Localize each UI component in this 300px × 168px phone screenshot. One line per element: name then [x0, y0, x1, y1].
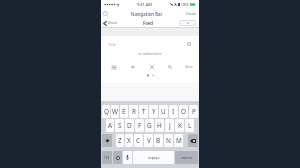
button[interactable]: V — [144, 134, 153, 147]
staticText: or add an item — [101, 51, 199, 56]
button[interactable]: Q — [102, 105, 110, 118]
button[interactable]: Undo — [129, 63, 137, 71]
staticText: 100% — [181, 3, 189, 7]
button[interactable]: 123 — [102, 151, 112, 164]
button[interactable]: Z — [116, 134, 124, 147]
button[interactable]: Title — [101, 38, 199, 50]
staticText: V — [147, 136, 151, 145]
staticText: K — [178, 121, 182, 130]
staticText: J — [169, 121, 171, 130]
button[interactable]: Search — [166, 63, 174, 71]
staticText: R — [132, 107, 136, 116]
staticText: espaço — [148, 155, 160, 160]
staticText: Q — [104, 107, 109, 116]
staticText: More — [185, 65, 193, 69]
button[interactable]: Options — [179, 20, 196, 26]
staticText: O — [181, 107, 186, 116]
staticText: N — [166, 136, 171, 145]
button[interactable]: Backspace — [188, 134, 198, 147]
button[interactable]: Emoji — [113, 151, 122, 164]
staticText: P — [192, 107, 196, 116]
button[interactable]: M — [174, 134, 183, 147]
staticText: M — [176, 136, 182, 145]
button[interactable]: E — [120, 105, 128, 118]
button[interactable]: I — [169, 105, 178, 118]
button[interactable]: W — [111, 105, 119, 118]
button[interactable]: More — [185, 65, 193, 69]
staticText: L — [188, 121, 192, 130]
staticText: X — [127, 136, 131, 145]
staticText: H — [157, 121, 162, 130]
staticText: G — [147, 121, 152, 130]
staticText: E — [122, 107, 126, 116]
button[interactable]: J — [165, 119, 174, 132]
button[interactable]: espaço — [133, 151, 174, 164]
button[interactable]: X — [125, 134, 133, 147]
button[interactable]: R — [129, 105, 138, 118]
staticText: S — [118, 121, 122, 130]
button[interactable]: Back — [103, 20, 118, 26]
button[interactable]: C — [134, 134, 143, 147]
button[interactable]: U — [159, 105, 168, 118]
button[interactable]: F — [135, 119, 144, 132]
button[interactable]: D — [125, 119, 134, 132]
button[interactable]: T — [139, 105, 148, 118]
button[interactable]: N — [164, 134, 173, 147]
button[interactable]: K — [175, 119, 184, 132]
button[interactable]: Shuffle — [148, 63, 156, 71]
staticText: D — [127, 121, 132, 130]
button[interactable]: List — [110, 63, 118, 71]
button[interactable]: Done — [186, 11, 197, 17]
button[interactable]: S — [115, 119, 124, 132]
staticText: B — [156, 136, 161, 145]
staticText: Back — [108, 20, 118, 26]
staticText: U — [161, 107, 166, 116]
staticText: Done — [186, 11, 197, 17]
staticText: C — [136, 136, 141, 145]
staticText: A — [108, 121, 113, 130]
staticText: Title — [108, 42, 116, 47]
button[interactable]: Dictation — [123, 151, 132, 164]
button[interactable]: P — [189, 105, 198, 118]
staticText: Y — [152, 107, 156, 116]
staticText: Z — [118, 136, 122, 145]
staticText: F — [138, 121, 142, 130]
button[interactable]: Shift — [102, 134, 112, 147]
button[interactable]: B — [154, 134, 163, 147]
button[interactable]: Info — [102, 10, 109, 17]
button[interactable]: H — [155, 119, 164, 132]
button[interactable]: L — [185, 119, 194, 132]
staticText: retorno — [181, 156, 193, 160]
staticText: Navigation Bar — [131, 11, 163, 17]
staticText: W — [112, 107, 118, 116]
button[interactable]: retorno — [175, 151, 198, 164]
staticText: I — [172, 107, 175, 116]
button[interactable]: Y — [149, 105, 158, 118]
button[interactable]: G — [145, 119, 154, 132]
staticText: Feed — [143, 20, 154, 26]
staticText: T — [142, 107, 146, 116]
staticText: 9:41 AM — [137, 2, 152, 7]
staticText: 123 — [104, 156, 110, 160]
button[interactable]: A — [106, 119, 114, 132]
button[interactable]: O — [179, 105, 188, 118]
